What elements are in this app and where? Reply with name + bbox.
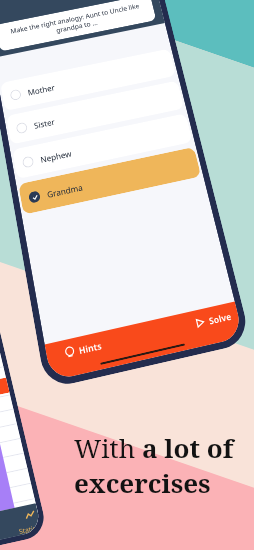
- staticText: Mother: [27, 82, 56, 97]
- staticText: With: [74, 430, 142, 465]
- staticText: a lot of: [142, 430, 234, 465]
- staticText: Solve: [207, 309, 233, 327]
- button[interactable]: Hints: [63, 339, 103, 360]
- staticText: Sister: [33, 116, 55, 131]
- button[interactable]: [17, 515, 42, 535]
- button[interactable]: [0, 439, 24, 458]
- staticText: Grandma: [46, 181, 84, 200]
- button[interactable]: [0, 353, 3, 371]
- button[interactable]: Nephew: [12, 113, 193, 179]
- staticText: Make the right analogy: Aunt to Uncle li…: [4, 1, 148, 45]
- button[interactable]: [3, 454, 27, 473]
- button[interactable]: [14, 499, 38, 519]
- button[interactable]: [0, 367, 7, 385]
- button[interactable]: Make the right analogy: Aunt to Uncle li…: [0, 0, 156, 52]
- staticText: Nephew: [39, 147, 73, 165]
- button[interactable]: [0, 424, 20, 443]
- button[interactable]: [0, 381, 10, 400]
- button[interactable]: Sister: [6, 80, 184, 145]
- staticText: Statistics: [18, 522, 42, 535]
- button[interactable]: Mother: [0, 48, 176, 111]
- button[interactable]: [10, 484, 35, 504]
- button[interactable]: [7, 469, 31, 488]
- button[interactable]: Solve: [193, 309, 233, 330]
- button[interactable]: Grandma: [18, 147, 201, 215]
- staticText: Hints: [78, 339, 103, 356]
- button[interactable]: Statistics: [15, 508, 42, 535]
- button[interactable]: [0, 410, 17, 428]
- button[interactable]: [0, 395, 14, 414]
- staticText: excercises: [74, 465, 211, 500]
